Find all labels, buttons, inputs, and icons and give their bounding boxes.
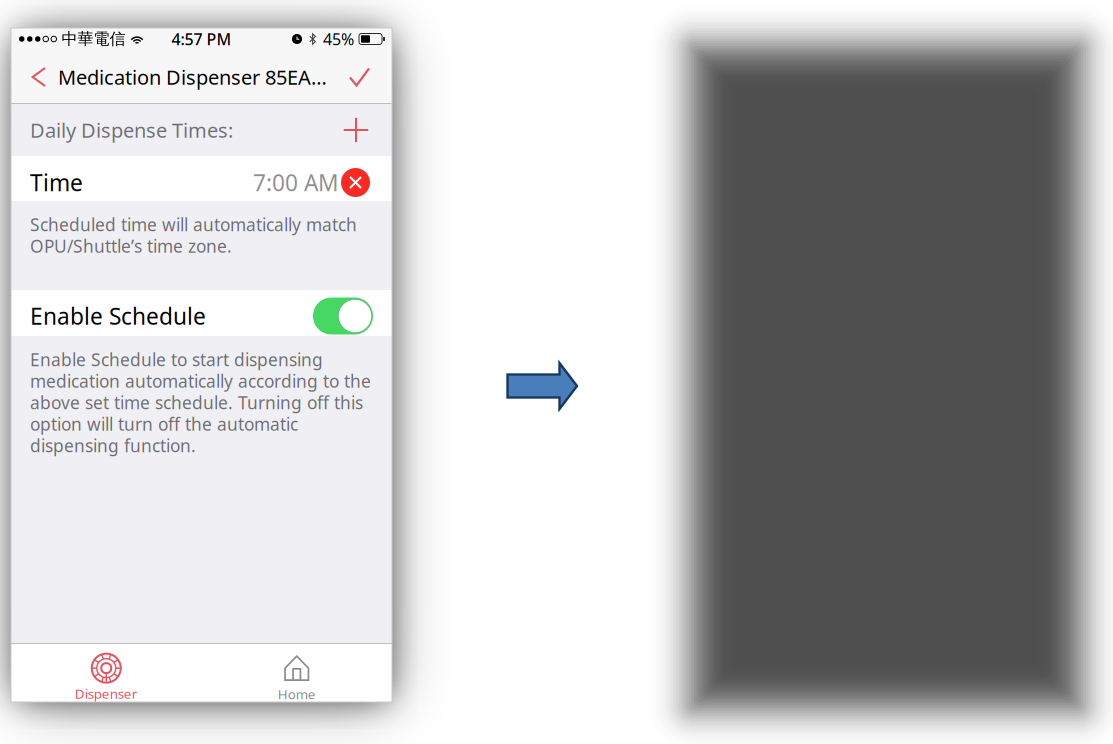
staticText: option will turn off the automatic — [30, 413, 298, 436]
staticText: Daily Dispense Times: — [30, 117, 233, 143]
staticText: 4:57 PM — [171, 28, 231, 50]
staticText: above set time schedule. Turning off thi… — [30, 391, 363, 414]
button[interactable]: Add time — [332, 104, 383, 156]
staticText: 7:00 AM — [253, 167, 339, 197]
button[interactable]: Home — [201, 643, 392, 702]
button[interactable]: Enable Schedule — [313, 297, 373, 334]
staticText: Time — [30, 167, 83, 197]
staticText: Home — [278, 685, 316, 703]
button[interactable]: Dispenser — [11, 643, 201, 702]
button[interactable]: Done — [337, 50, 392, 104]
staticText: Enable Schedule to start dispensing — [30, 348, 323, 371]
staticText: Medication Dispenser 85EA… — [58, 64, 327, 90]
staticText: Scheduled time will automatically match — [30, 213, 357, 236]
button[interactable]: Back — [11, 50, 58, 104]
staticText: Enable Schedule — [30, 301, 206, 331]
staticText: 中華電信 — [61, 29, 125, 49]
staticText: dispensing function. — [30, 434, 196, 457]
staticText: OPU/Shuttle’s time zone. — [30, 234, 232, 257]
staticText: Dispenser — [75, 685, 138, 702]
staticText: medication automatically according to th… — [30, 369, 371, 392]
button[interactable]: Time — [11, 156, 392, 201]
staticText: 45% — [323, 28, 354, 50]
